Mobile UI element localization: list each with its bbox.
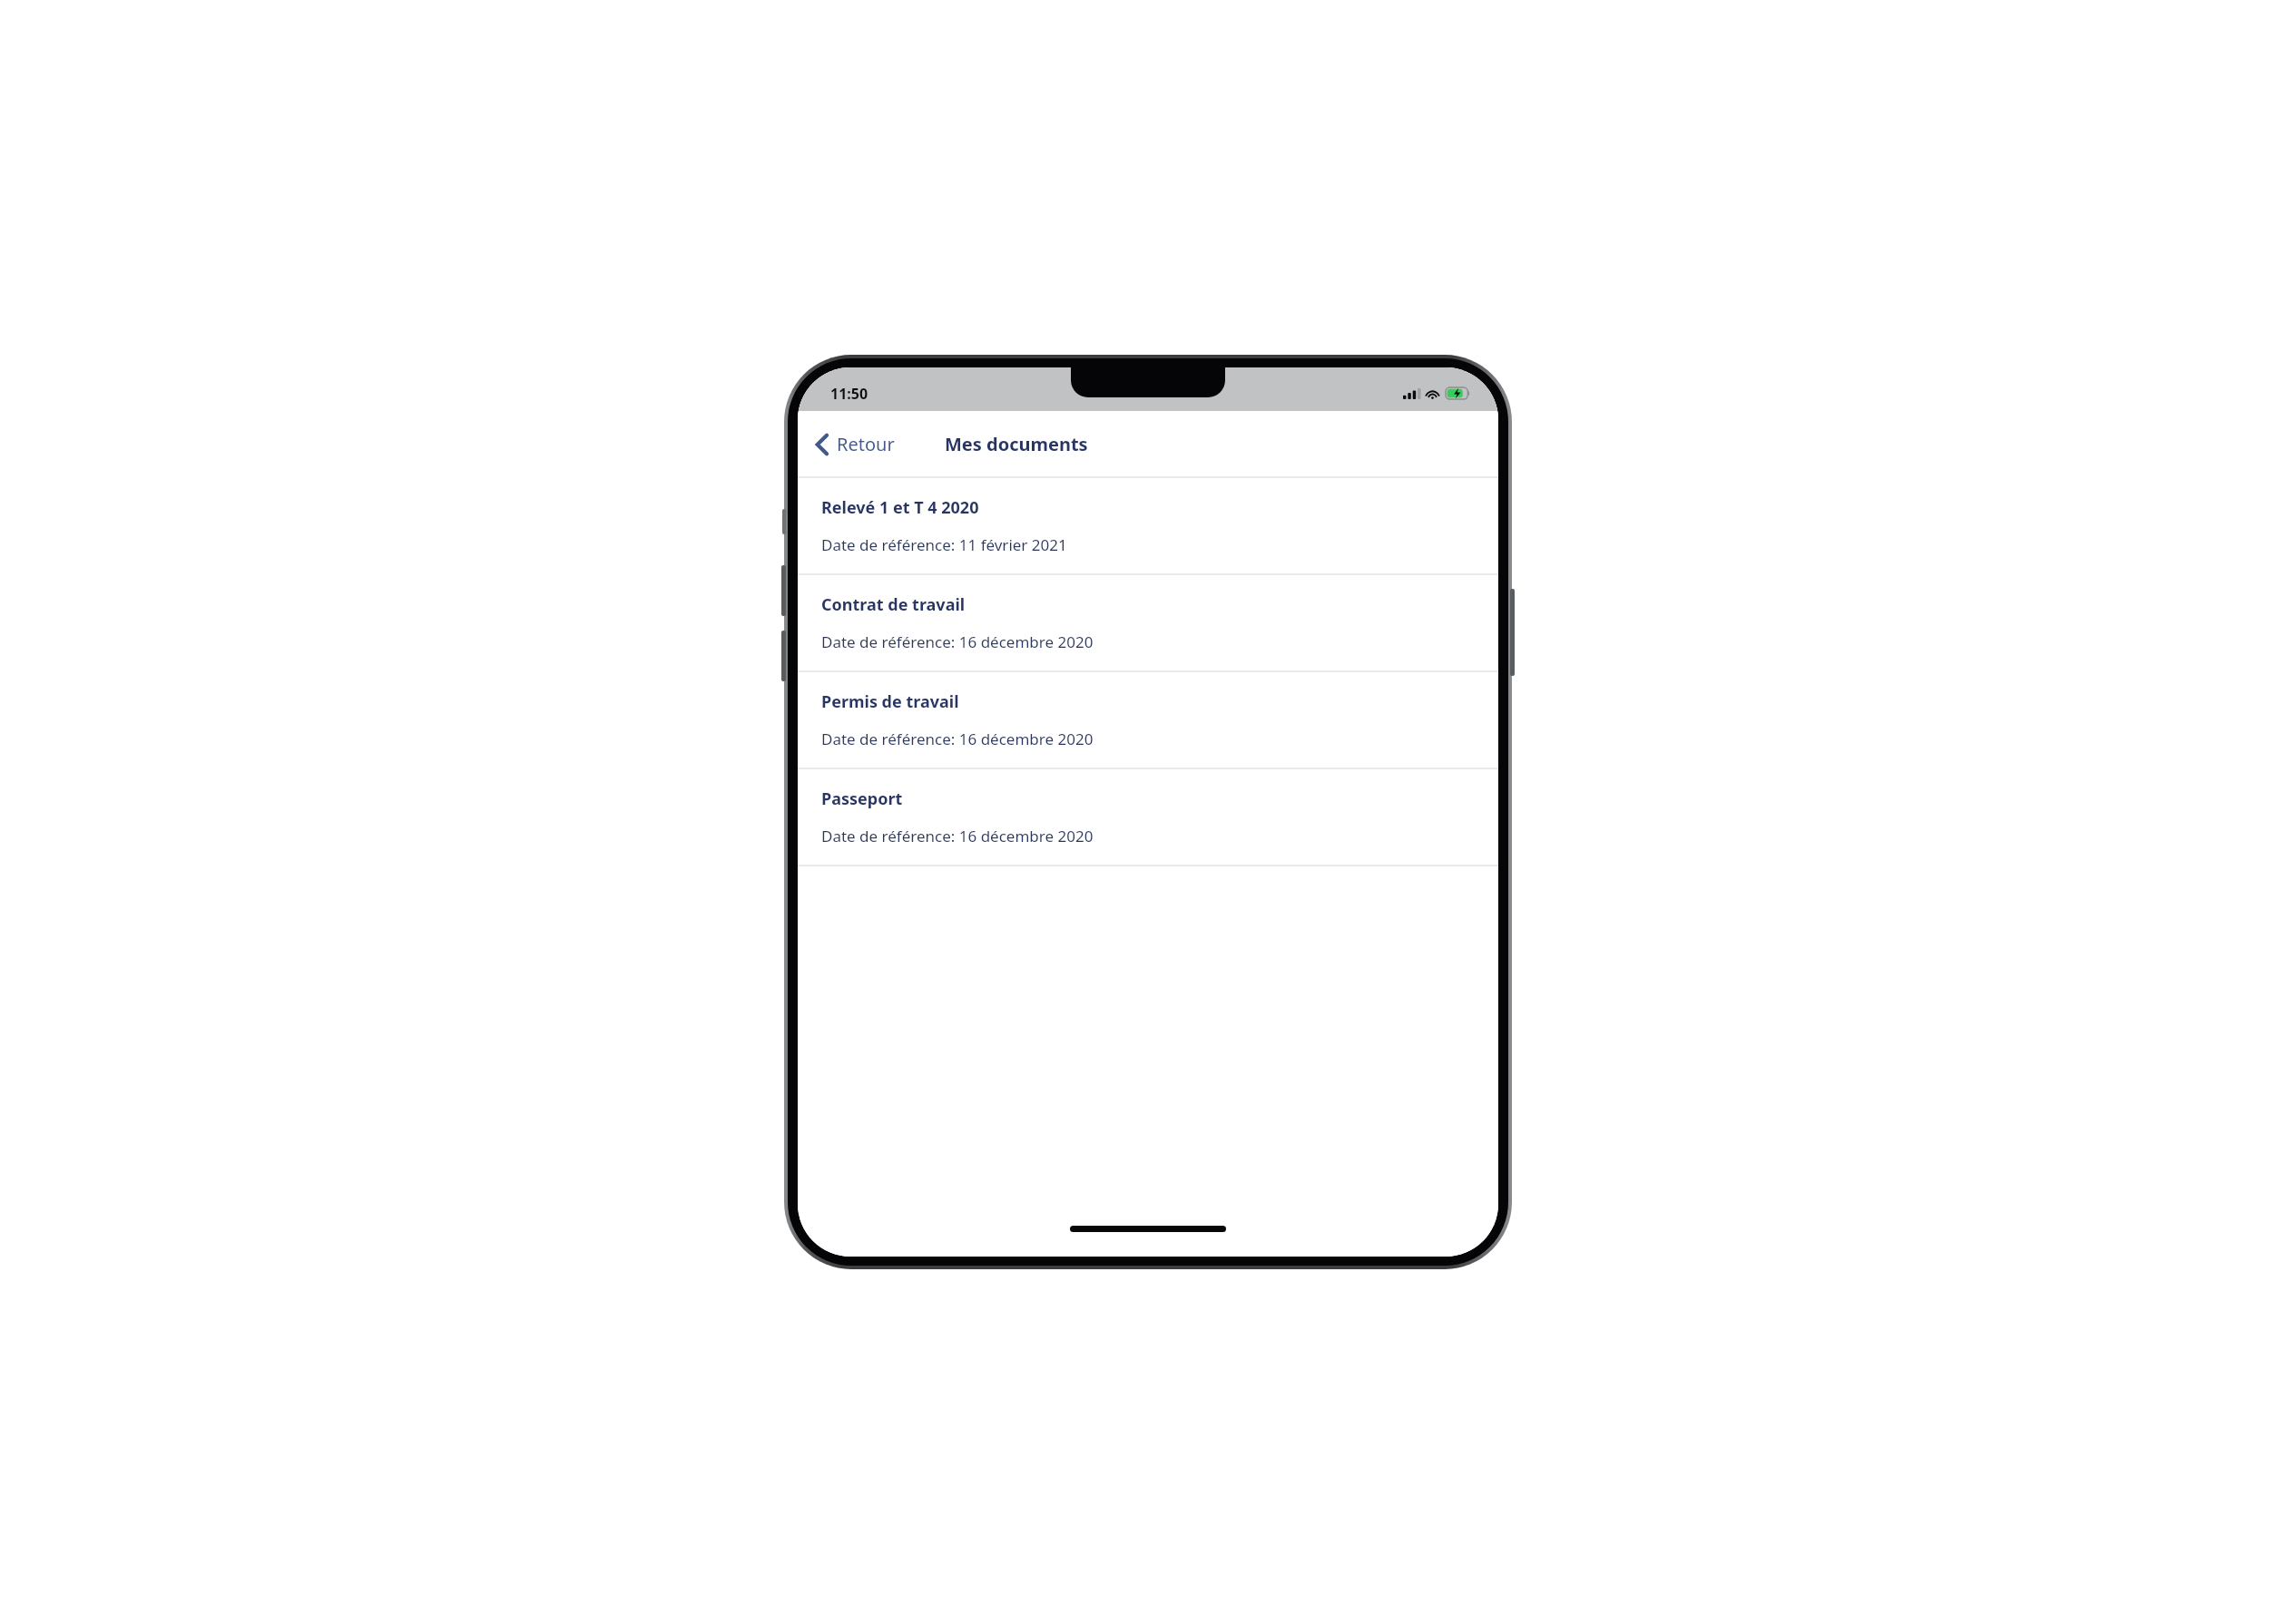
staticText: Retour <box>837 432 895 456</box>
staticText: 11:50 <box>830 384 868 404</box>
button[interactable]: Passeport <box>798 769 1498 865</box>
staticText: Date de référence: 16 décembre 2020 <box>821 631 1094 652</box>
staticText: Passeport <box>821 788 903 810</box>
staticText: Date de référence: 16 décembre 2020 <box>821 826 1094 846</box>
button[interactable]: Retour <box>807 425 904 464</box>
button[interactable]: Relevé 1 et T 4 2020 <box>798 478 1498 573</box>
staticText: Date de référence: 16 décembre 2020 <box>821 729 1094 749</box>
staticText: Contrat de travail <box>821 593 966 616</box>
staticText: Relevé 1 et T 4 2020 <box>821 496 979 519</box>
staticText: Permis de travail <box>821 690 959 713</box>
button[interactable]: Permis de travail <box>798 672 1498 768</box>
button[interactable]: Contrat de travail <box>798 575 1498 670</box>
staticText: Date de référence: 11 février 2021 <box>821 534 1067 555</box>
staticText: Mes documents <box>945 432 1088 456</box>
